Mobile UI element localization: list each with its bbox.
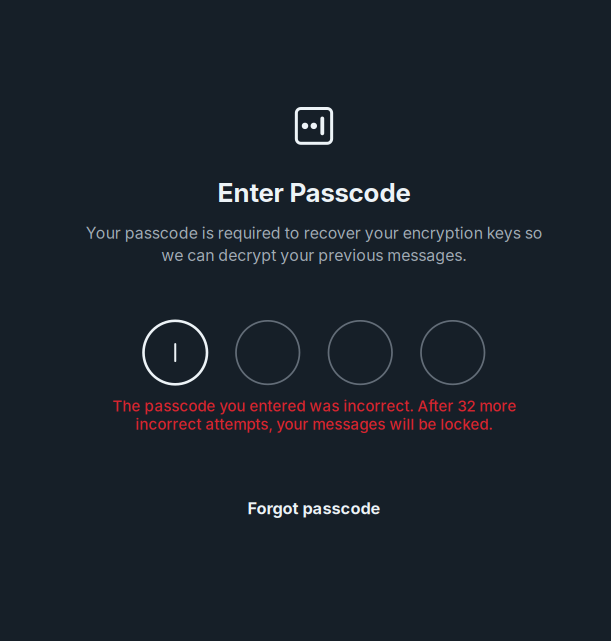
staticText: Enter Passcode [217,177,410,208]
button[interactable]: Passcode digit 3 [328,321,392,384]
staticText: The passcode you entered was incorrect. … [112,397,516,433]
staticText: Your passcode is required to recover you… [85,223,542,265]
staticText: Forgot passcode [247,498,380,518]
button[interactable]: Passcode digit 1 [143,321,207,384]
button[interactable]: Passcode digit 2 [236,321,299,384]
button[interactable]: Forgot passcode [233,489,394,527]
button[interactable]: Passcode digit 4 [421,321,484,384]
